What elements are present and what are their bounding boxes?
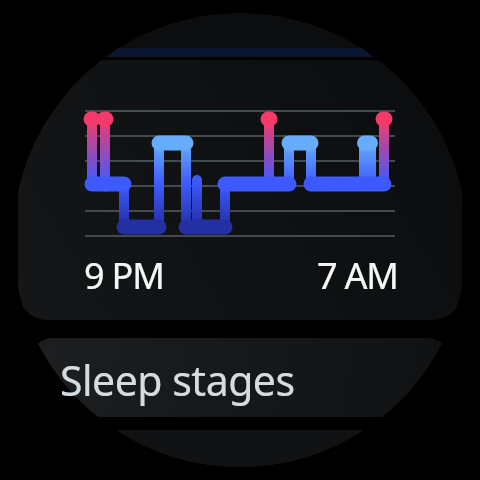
staticText: 7 AM (317, 251, 398, 300)
staticText: Sleep stages (60, 352, 295, 408)
button[interactable] (28, 338, 452, 417)
staticText: 9 PM (84, 251, 164, 300)
button[interactable] (18, 60, 462, 320)
